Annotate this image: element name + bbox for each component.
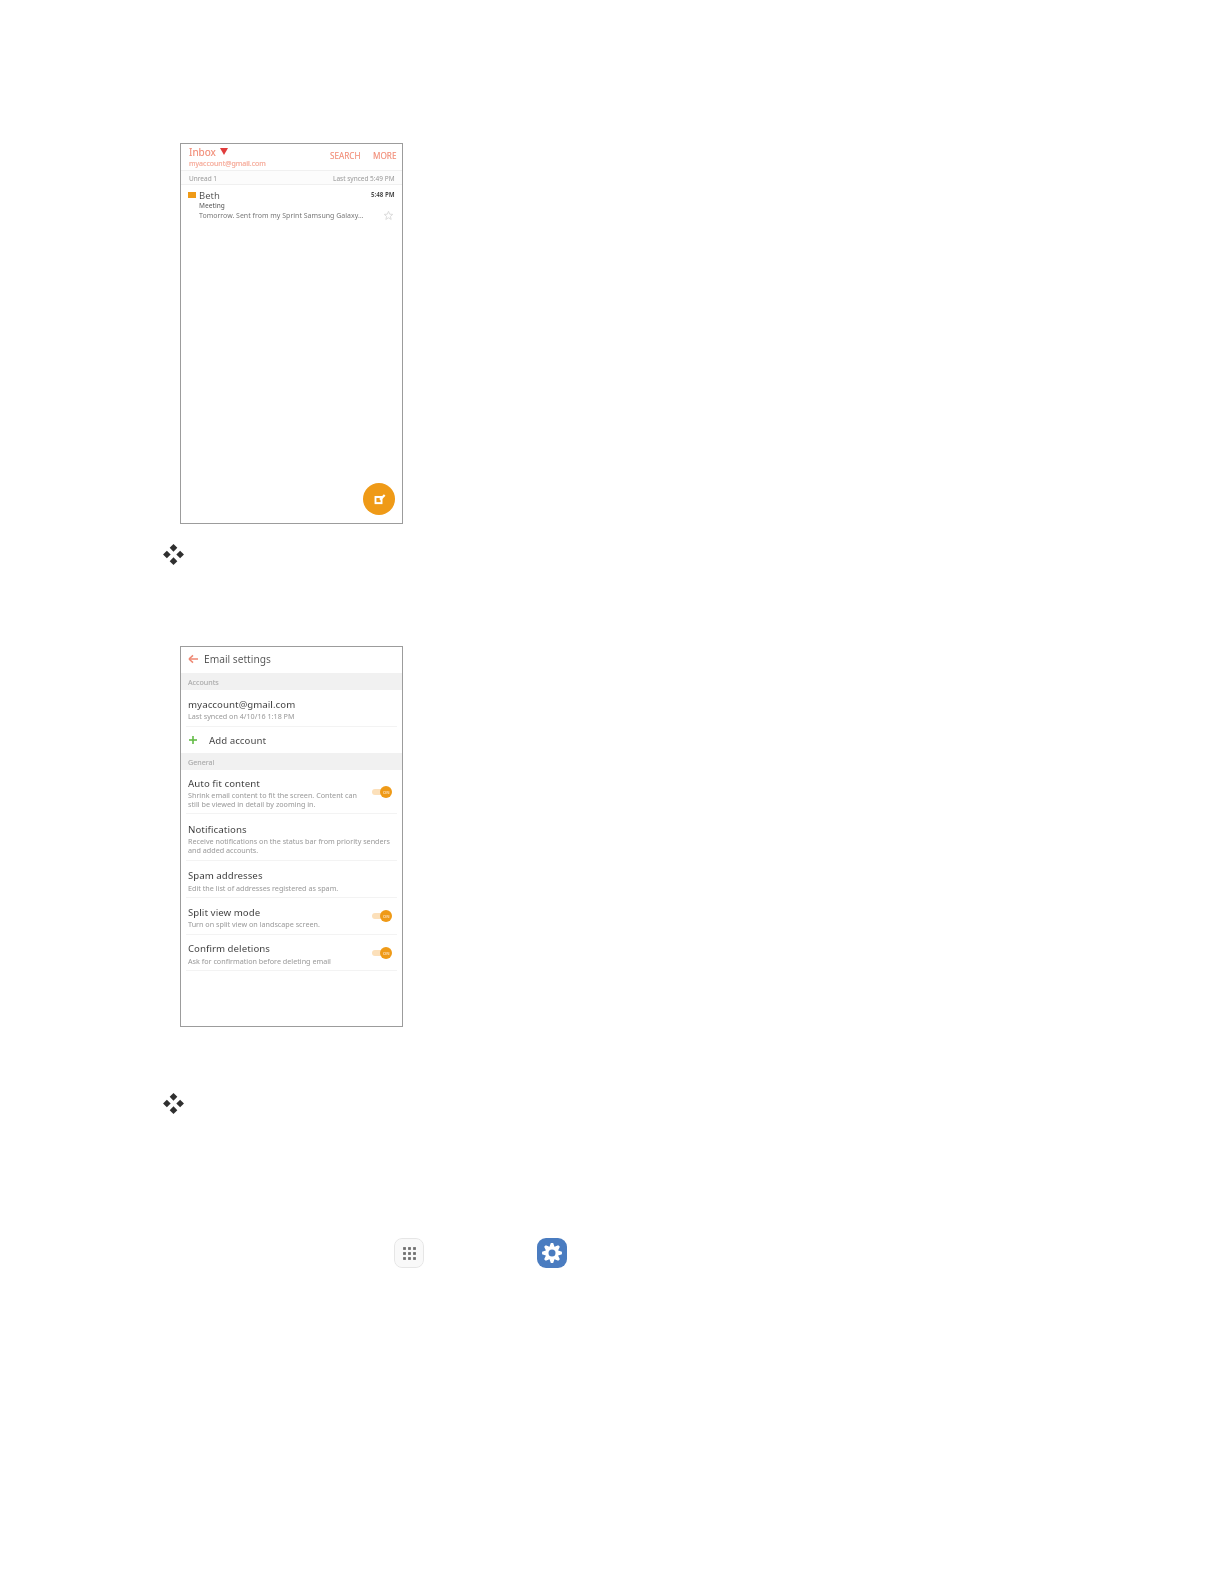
button[interactable]: Apps xyxy=(394,1238,424,1268)
staticText: Shrink email content to fit the screen. … xyxy=(188,790,357,800)
button[interactable]: Toggle Auto fit content xyxy=(368,785,394,799)
staticText: Confirm deletions xyxy=(188,942,270,955)
staticText: Split view mode xyxy=(188,906,261,919)
staticText: Accounts xyxy=(188,677,219,687)
staticText: myaccount@gmail.com xyxy=(188,698,296,711)
staticText: 5:48 PM xyxy=(371,190,395,198)
button[interactable]: Settings xyxy=(537,1238,567,1268)
button[interactable]: Toggle Split view mode xyxy=(368,909,394,923)
staticText: SEARCH xyxy=(330,150,361,161)
button[interactable]: Star xyxy=(382,209,394,221)
button[interactable]: MORE xyxy=(371,148,399,163)
button[interactable] xyxy=(180,690,403,726)
button[interactable]: Toggle Confirm deletions xyxy=(368,946,394,960)
staticText: ON xyxy=(383,914,390,919)
staticText: Receive notifications on the status bar … xyxy=(188,836,390,846)
button[interactable]: Back xyxy=(183,649,203,669)
button[interactable] xyxy=(180,185,403,225)
staticText: ON xyxy=(383,790,390,795)
staticText: Ask for confirmation before deleting ema… xyxy=(188,956,331,966)
staticText: Email settings xyxy=(204,652,271,666)
staticText: Beth xyxy=(199,189,220,202)
staticText: Edit the list of addresses registered as… xyxy=(188,883,339,893)
staticText: General xyxy=(188,757,215,767)
button[interactable] xyxy=(180,861,403,897)
staticText: myaccount@gmail.com xyxy=(189,159,266,169)
staticText: and added accounts. xyxy=(188,845,259,855)
button[interactable] xyxy=(180,935,403,970)
staticText: Last synced on 4/10/16 1:18 PM xyxy=(188,711,295,721)
staticText: Inbox xyxy=(189,145,216,159)
staticText: MORE xyxy=(373,150,397,161)
staticText: Last synced 5:49 PM xyxy=(333,174,395,183)
button[interactable] xyxy=(180,814,403,860)
button[interactable] xyxy=(180,898,403,934)
staticText: ON xyxy=(383,951,390,956)
staticText: Auto fit content xyxy=(188,777,260,790)
staticText: Unread 1 xyxy=(189,174,218,183)
staticText: Add account xyxy=(209,734,267,747)
staticText: Turn on split view on landscape screen. xyxy=(188,919,320,929)
button[interactable] xyxy=(180,770,403,813)
staticText: Spam addresses xyxy=(188,869,263,882)
staticText: Tomorrow. Sent from my Sprint Samsung Ga… xyxy=(199,211,385,221)
button[interactable] xyxy=(185,144,295,169)
button[interactable] xyxy=(180,727,403,753)
button[interactable]: Compose xyxy=(363,483,395,515)
staticText: Notifications xyxy=(188,823,247,836)
staticText: Meeting xyxy=(199,201,225,210)
staticText: still be viewed in detail by zooming in. xyxy=(188,799,316,809)
button[interactable]: SEARCH xyxy=(328,148,363,163)
